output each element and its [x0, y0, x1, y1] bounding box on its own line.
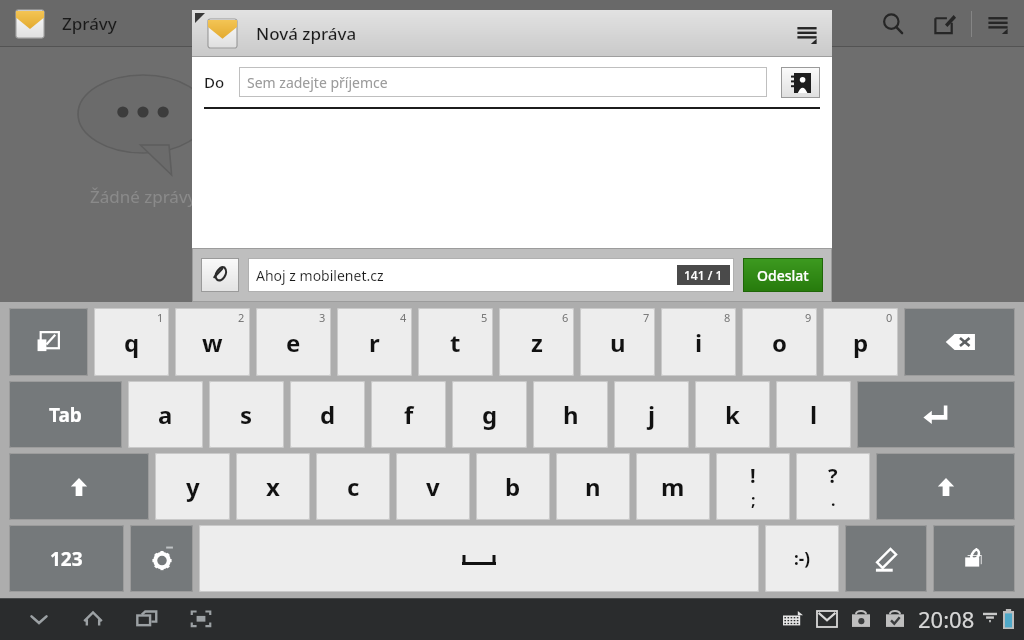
button[interactable]: k — [695, 381, 770, 448]
staticText: j — [648, 398, 656, 431]
staticText: Odeslat — [757, 266, 809, 285]
staticText: 7 — [643, 310, 650, 325]
button[interactable]: Downloads — [844, 598, 878, 640]
button[interactable]: h — [533, 381, 608, 448]
staticText: 141 / 1 — [684, 267, 723, 283]
button[interactable]: p — [823, 308, 898, 376]
staticText: 8 — [724, 310, 731, 325]
staticText: u — [610, 326, 626, 359]
staticText: e — [286, 326, 301, 359]
staticText: Nová zpráva — [256, 22, 357, 45]
button[interactable]: d — [290, 381, 365, 448]
button[interactable]: Tab — [9, 381, 122, 448]
staticText: 0 — [886, 310, 893, 325]
staticText: Zprávy — [62, 12, 117, 35]
button[interactable]: n — [556, 453, 630, 520]
button[interactable]: x — [236, 453, 310, 520]
staticText: 4 — [400, 310, 407, 325]
button[interactable]: w — [175, 308, 250, 376]
staticText: 5 — [481, 310, 488, 325]
button[interactable]: m — [636, 453, 710, 520]
staticText: a — [158, 398, 173, 431]
staticText: ! — [750, 462, 756, 489]
button[interactable]: l — [776, 381, 851, 448]
staticText: k — [725, 398, 740, 431]
button[interactable]: r — [337, 308, 412, 376]
button[interactable]: Odeslat — [743, 258, 823, 292]
button[interactable]: More options — [782, 10, 832, 57]
staticText: w — [202, 326, 223, 359]
staticText: t — [450, 326, 461, 359]
staticText: o — [772, 326, 787, 359]
button[interactable]: Search — [867, 0, 919, 47]
button[interactable]: Updates — [878, 598, 912, 640]
button[interactable]: Choose contact — [781, 67, 820, 98]
staticText: i — [695, 326, 703, 359]
button[interactable]: u — [580, 308, 655, 376]
button[interactable]: Screenshot — [174, 598, 228, 640]
button[interactable]: c — [316, 453, 390, 520]
staticText: Tab — [49, 402, 82, 428]
staticText: y — [186, 470, 200, 503]
button[interactable]: i — [661, 308, 736, 376]
staticText: s — [240, 398, 253, 431]
button[interactable]: Attach — [201, 258, 239, 292]
staticText: Do — [204, 72, 225, 92]
staticText: ; — [751, 489, 756, 511]
staticText: h — [563, 398, 579, 431]
button[interactable]: a — [128, 381, 203, 448]
button[interactable]: Space — [199, 525, 759, 592]
button[interactable]: Keyboard settings — [130, 525, 193, 592]
staticText: 20:08 — [918, 604, 975, 634]
staticText: d — [320, 398, 336, 431]
staticText: 9 — [805, 310, 812, 325]
button[interactable]: :-) — [765, 525, 839, 592]
button[interactable]: e — [256, 308, 331, 376]
button[interactable]: s — [209, 381, 284, 448]
staticText: g — [482, 398, 498, 431]
button[interactable]: Ahoj z mobilenet.cz — [248, 258, 734, 292]
staticText: 3 — [319, 310, 326, 325]
staticText: 1 — [157, 310, 164, 325]
button[interactable]: f — [371, 381, 446, 448]
button[interactable]: Shift — [9, 453, 149, 520]
staticText: 6 — [562, 310, 569, 325]
button[interactable]: ? — [796, 453, 870, 520]
button[interactable]: Home — [66, 598, 120, 640]
button[interactable]: ! — [716, 453, 790, 520]
button[interactable]: Hide keyboard — [9, 308, 88, 376]
button[interactable]: Back — [12, 598, 66, 640]
button[interactable]: 123 — [9, 525, 124, 592]
staticText: z — [531, 326, 543, 359]
staticText: c — [347, 470, 360, 503]
button[interactable]: More options — [972, 0, 1024, 47]
button[interactable]: Keyboard — [776, 598, 810, 640]
button[interactable]: Recents — [120, 598, 174, 640]
staticText: x — [266, 470, 280, 503]
button[interactable]: q — [94, 308, 169, 376]
staticText: Sem zadejte příjemce — [247, 73, 388, 92]
button[interactable]: b — [476, 453, 550, 520]
staticText: Ahoj z mobilenet.cz — [256, 266, 384, 285]
button[interactable]: Backspace — [904, 308, 1015, 376]
button[interactable]: New message — [919, 0, 971, 47]
staticText: 123 — [50, 546, 83, 572]
staticText: Žádné zprávy — [90, 185, 197, 208]
button[interactable]: Handwriting — [845, 525, 927, 592]
button[interactable]: Email — [810, 598, 844, 640]
button[interactable]: y — [155, 453, 230, 520]
button[interactable]: j — [614, 381, 689, 448]
staticText: n — [585, 470, 601, 503]
button[interactable]: Enter — [857, 381, 1015, 448]
staticText: r — [369, 326, 380, 359]
staticText: b — [505, 470, 521, 503]
button[interactable]: g — [452, 381, 527, 448]
button[interactable]: o — [742, 308, 817, 376]
staticText: m — [661, 470, 685, 503]
button[interactable]: Shift — [876, 453, 1015, 520]
button[interactable]: v — [396, 453, 470, 520]
button[interactable]: Sem zadejte příjemce — [239, 67, 767, 97]
button[interactable]: z — [499, 308, 574, 376]
button[interactable]: Attach — [933, 525, 1015, 592]
button[interactable]: t — [418, 308, 493, 376]
